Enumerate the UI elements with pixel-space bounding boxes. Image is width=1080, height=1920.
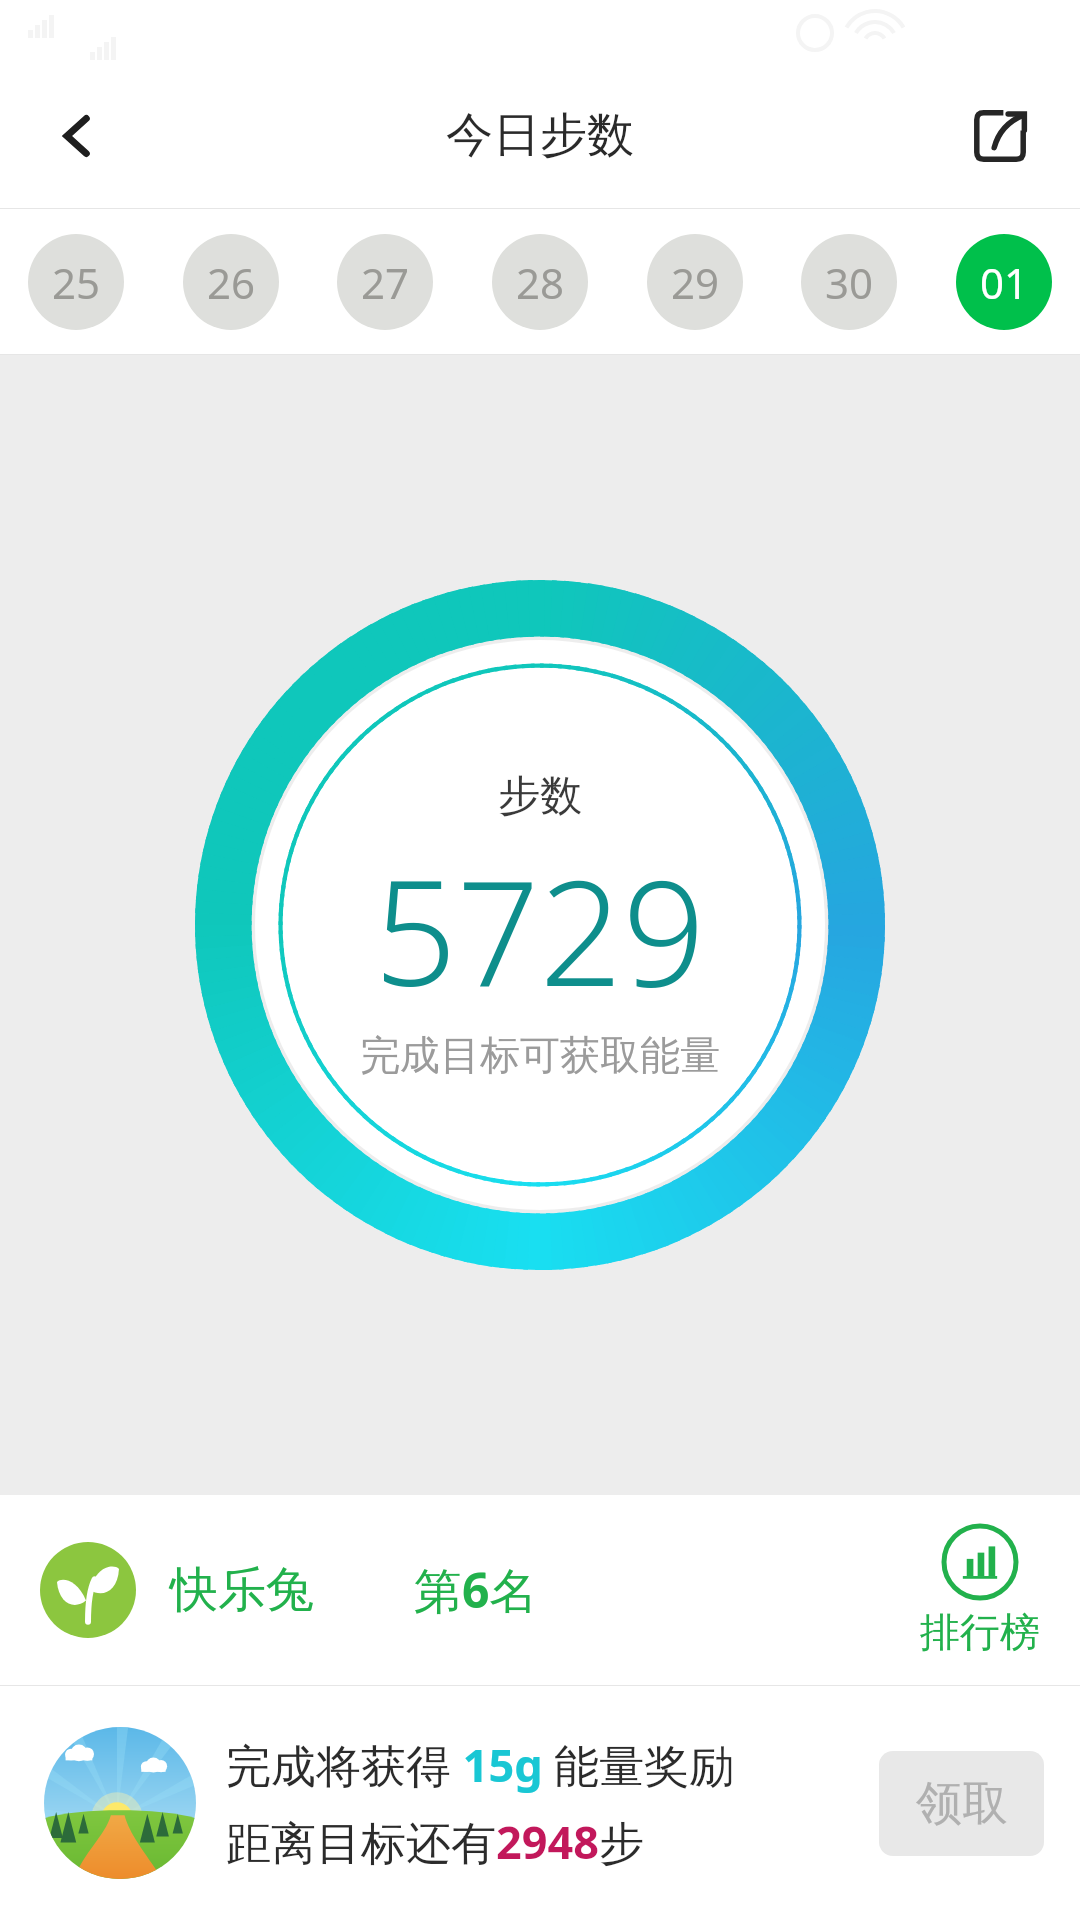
staticText: 27 <box>361 254 410 311</box>
staticText: 01 <box>980 254 1029 311</box>
button[interactable]: 01 <box>956 234 1052 330</box>
button[interactable]: 28 <box>492 234 588 330</box>
staticText: 第6名 <box>414 1557 538 1623</box>
button[interactable]: 排行榜 <box>920 1523 1040 1657</box>
staticText: 完成目标可获取能量 <box>360 1030 720 1080</box>
button[interactable]: 25 <box>28 234 124 330</box>
staticText: 快乐兔 <box>170 1560 314 1620</box>
button[interactable]: 领取 <box>879 1751 1044 1856</box>
button[interactable]: 27 <box>337 234 433 330</box>
staticText: 领取 <box>916 1775 1008 1833</box>
button[interactable]: 29 <box>647 234 743 330</box>
staticText: 5729 <box>374 831 706 1028</box>
button[interactable]: 快乐兔 <box>40 1542 314 1638</box>
staticText: 30 <box>825 254 874 311</box>
staticText: 距离目标还有2948步 <box>226 1811 644 1872</box>
button[interactable]: 26 <box>183 234 279 330</box>
button[interactable]: 第6名 <box>414 1557 538 1623</box>
staticText: 步数 <box>498 770 582 823</box>
staticText: 26 <box>207 254 256 311</box>
staticText: 28 <box>516 254 565 311</box>
staticText: 完成将获得 15g 能量奖励 <box>226 1734 735 1795</box>
button[interactable]: 30 <box>801 234 897 330</box>
staticText: 排行榜 <box>920 1607 1040 1657</box>
button[interactable]: Share <box>950 86 1050 186</box>
button[interactable]: Back <box>28 86 128 186</box>
staticText: 29 <box>671 254 720 311</box>
staticText: 25 <box>52 254 101 311</box>
staticText: 今日步数 <box>446 106 634 165</box>
